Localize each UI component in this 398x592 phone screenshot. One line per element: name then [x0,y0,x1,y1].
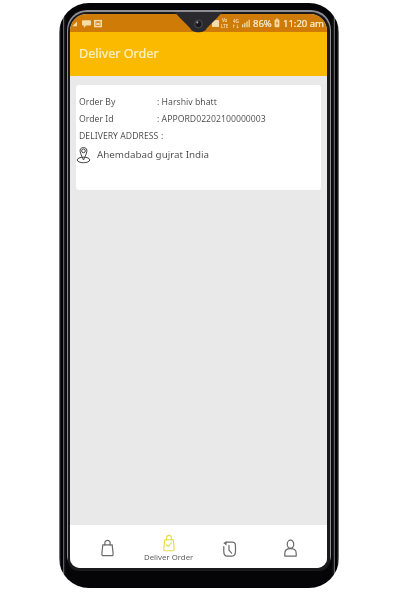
button[interactable]: Profile [260,525,321,568]
staticText: Ahemdabad gujrat India [97,148,210,161]
staticText: Deliver Order [144,552,194,563]
staticText: 86% [253,17,272,30]
staticText: Order Id [79,113,114,125]
staticText: 11:20 am [283,17,324,30]
staticText: ↑↓ [232,24,240,29]
staticText: Deliver Order [79,45,159,62]
staticText: DELIVERY ADDRESS [79,130,159,142]
button[interactable]: Deliver Order [138,525,199,568]
button[interactable]: History [199,525,260,568]
staticText: Vo [222,17,228,23]
staticText: : Harshiv bhatt [157,96,217,108]
staticText: LTE [221,23,229,29]
button[interactable]: Orders [76,525,138,568]
staticText: 4G [233,18,239,24]
staticText: Order By [79,96,116,108]
staticText: : APPORD02202100000003 [157,113,266,125]
staticText: : [161,130,164,142]
